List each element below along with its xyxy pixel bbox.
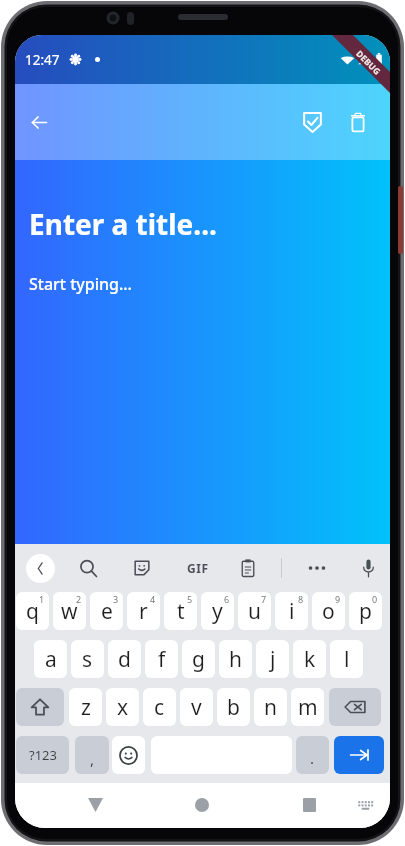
button[interactable]: g [182, 640, 215, 678]
staticText: t [177, 597, 185, 626]
button[interactable]: x [106, 688, 139, 726]
staticText: 2 [76, 593, 82, 605]
button[interactable]: i [275, 592, 308, 630]
button[interactable]: a [34, 640, 67, 678]
staticText: 8 [298, 593, 304, 605]
button[interactable]: m [291, 688, 324, 726]
button[interactable]: Switch keyboard [345, 785, 385, 825]
staticText: r [139, 597, 148, 626]
staticText: h [229, 645, 242, 674]
button[interactable]: Back [17, 100, 61, 144]
button[interactable]: b [217, 688, 250, 726]
staticText: , [90, 749, 95, 769]
button[interactable]: n [254, 688, 287, 726]
staticText: 3 [113, 593, 119, 605]
staticText: DEBUG [353, 48, 384, 78]
staticText: m [298, 693, 318, 722]
staticText: c [154, 693, 165, 722]
button[interactable]: Emoji [112, 736, 145, 774]
staticText: u [248, 597, 261, 626]
button[interactable]: q [16, 592, 49, 630]
staticText: y [212, 597, 223, 626]
button[interactable]: d [108, 640, 141, 678]
staticText: 4 [150, 593, 156, 605]
button[interactable]: v [180, 688, 213, 726]
staticText: j [270, 645, 276, 674]
staticText: 5 [187, 593, 193, 605]
button[interactable]: o [312, 592, 345, 630]
button[interactable]: e [90, 592, 123, 630]
staticText: 1 [39, 593, 45, 605]
button[interactable]: p [349, 592, 382, 630]
staticText: z [81, 693, 91, 722]
button[interactable]: Delete [336, 100, 380, 144]
staticText: w [61, 597, 78, 626]
button[interactable]: Shift [16, 688, 64, 726]
staticText: e [101, 597, 113, 626]
button[interactable]: Stickers [125, 551, 159, 585]
button[interactable]: j [256, 640, 289, 678]
button[interactable]: k [293, 640, 326, 678]
staticText: g [192, 645, 205, 674]
button[interactable]: Back [23, 551, 57, 585]
button[interactable]: l [330, 640, 363, 678]
button[interactable]: More options [300, 551, 334, 585]
staticText: l [344, 645, 350, 674]
button[interactable]: Voice input [351, 551, 385, 585]
button[interactable]: z [69, 688, 102, 726]
staticText: 7 [261, 593, 267, 605]
staticText: p [359, 597, 372, 626]
staticText: b [227, 693, 240, 722]
button[interactable]: Recents [289, 785, 329, 825]
button[interactable]: u [238, 592, 271, 630]
staticText: f [158, 645, 166, 674]
button[interactable]: . [296, 736, 329, 774]
button[interactable]: s [71, 640, 104, 678]
staticText: 9 [335, 593, 341, 605]
staticText: GIF [187, 560, 209, 576]
staticText: x [117, 693, 129, 722]
button[interactable]: Save [290, 100, 334, 144]
button[interactable]: ?123 [16, 736, 69, 774]
button[interactable]: Enter [334, 736, 384, 774]
button[interactable]: t [164, 592, 197, 630]
staticText: 0 [372, 593, 378, 605]
staticText: Enter a title... [29, 205, 217, 243]
button[interactable]: Home [182, 785, 222, 825]
staticText: a [45, 645, 57, 674]
button[interactable]: f [145, 640, 178, 678]
staticText: d [118, 645, 131, 674]
button[interactable]: y [201, 592, 234, 630]
staticText: n [264, 693, 277, 722]
button[interactable]: , [75, 736, 109, 774]
staticText: s [82, 645, 93, 674]
button[interactable]: GIF [181, 551, 215, 585]
button[interactable]: Search [71, 551, 105, 585]
button[interactable]: Back [75, 785, 115, 825]
staticText: i [289, 597, 295, 626]
button[interactable]: w [53, 592, 86, 630]
staticText: . [310, 748, 315, 768]
button[interactable]: Backspace [329, 688, 381, 726]
staticText: k [304, 645, 316, 674]
button[interactable]: c [143, 688, 176, 726]
staticText: 6 [224, 593, 230, 605]
button[interactable]: h [219, 640, 252, 678]
staticText: Start typing... [29, 273, 132, 295]
staticText: o [322, 597, 335, 626]
staticText: ?123 [29, 746, 57, 764]
button[interactable]: Clipboard [231, 551, 265, 585]
button[interactable]: r [127, 592, 160, 630]
staticText: 12:47 [25, 51, 60, 69]
staticText: v [191, 693, 202, 722]
staticText: q [26, 597, 39, 626]
